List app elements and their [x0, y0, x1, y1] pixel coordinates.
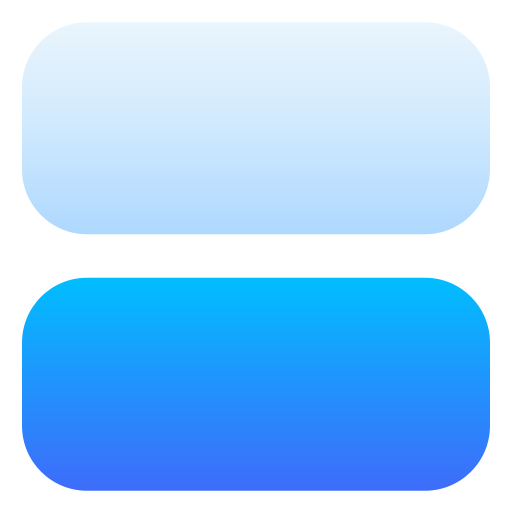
button[interactable]: Blue card [22, 278, 490, 491]
button[interactable]: Light blue card [22, 22, 490, 234]
